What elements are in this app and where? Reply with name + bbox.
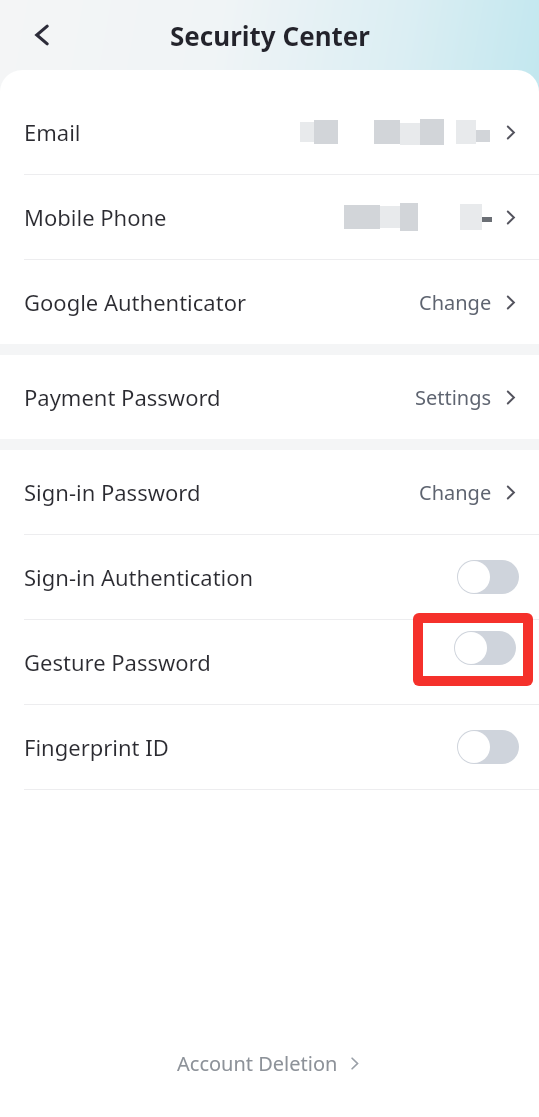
button[interactable]: Account Deletion [167,1044,372,1083]
staticText: Account Deletion [177,1050,338,1077]
button[interactable]: Sign-in Authentication [0,535,539,619]
button[interactable]: Mobile Phone [0,175,539,259]
staticText: Settings [415,384,492,411]
staticText: Sign-in Password [24,477,201,507]
button[interactable]: Email [0,90,539,174]
button[interactable]: Gesture Password [0,620,539,704]
button[interactable]: Back [16,9,68,61]
staticText: Change [419,479,492,506]
staticText: Security Center [170,18,370,53]
button[interactable]: Sign-in Authentication toggle, off [457,560,519,594]
button[interactable]: Fingerprint ID [0,705,539,789]
staticText: Email [24,117,81,147]
button[interactable]: Sign-in Password [0,450,539,534]
staticText: Change [419,289,492,316]
button[interactable]: Gesture Password toggle, off [454,631,516,665]
staticText: Fingerprint ID [24,732,169,762]
staticText: Mobile Phone [24,202,167,232]
staticText: Sign-in Authentication [24,562,254,592]
button[interactable]: Gesture Password toggle, off [457,645,519,679]
staticText: Payment Password [24,382,221,412]
button[interactable]: Google Authenticator [0,260,539,344]
button[interactable]: Payment Password [0,355,539,439]
staticText: Google Authenticator [24,287,247,317]
button[interactable]: Fingerprint ID toggle, off [457,730,519,764]
staticText: Gesture Password [24,647,211,677]
